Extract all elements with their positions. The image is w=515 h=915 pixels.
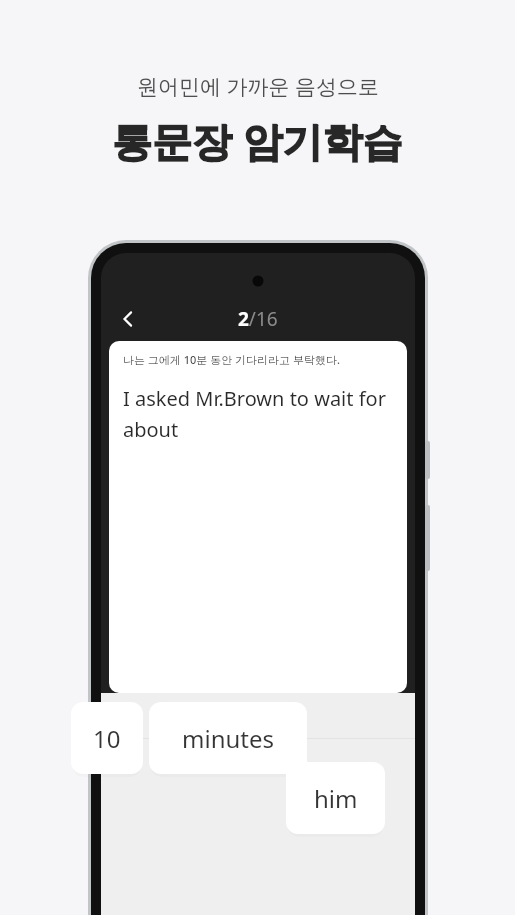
staticText: 통문장 암기학습 <box>112 113 403 168</box>
staticText: minutes <box>182 722 274 755</box>
staticText: 10 <box>93 722 121 755</box>
button[interactable]: 나는 그에게 10분 동안 기다리라고 부탁했다. <box>109 341 407 693</box>
staticText: 2/16 <box>238 306 278 332</box>
button[interactable]: Back <box>107 298 149 340</box>
button[interactable]: Volume <box>425 505 430 571</box>
button[interactable]: Power <box>425 441 430 479</box>
staticText: 원어민에 가까운 음성으로 <box>137 72 379 101</box>
staticText: him <box>314 782 358 815</box>
staticText: I asked Mr.Brown to wait for about <box>123 385 393 443</box>
button[interactable]: minutes <box>149 702 307 774</box>
button[interactable]: him <box>286 762 385 834</box>
staticText: 나는 그에게 10분 동안 기다리라고 부탁했다. <box>123 352 340 367</box>
button[interactable]: 10 <box>71 702 143 774</box>
